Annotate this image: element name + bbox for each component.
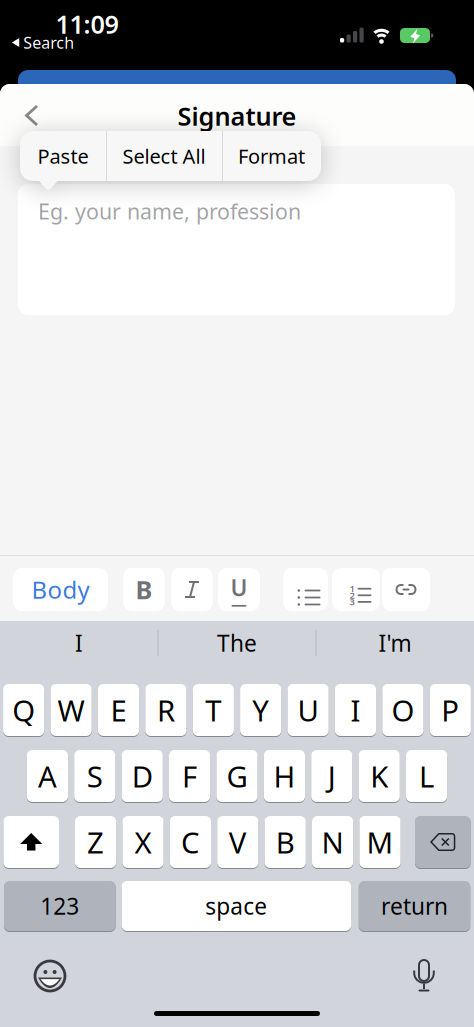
button[interactable]: Dictate <box>402 954 446 998</box>
button[interactable]: P <box>430 683 471 736</box>
button[interactable]: S <box>74 749 115 802</box>
button[interactable]: Q <box>3 683 44 736</box>
button[interactable]: Back to Search <box>12 34 74 50</box>
button[interactable]: Numbered list <box>332 568 380 611</box>
button[interactable]: F <box>169 749 210 802</box>
button[interactable]: Bold <box>123 568 165 611</box>
button[interactable]: V <box>217 815 258 868</box>
staticText: Q <box>12 690 35 729</box>
staticText: V <box>229 822 247 861</box>
button[interactable]: H <box>264 749 305 802</box>
button[interactable]: Emoji <box>28 954 72 998</box>
staticText: I <box>75 628 83 658</box>
button[interactable]: return <box>359 880 470 931</box>
staticText: B <box>135 573 152 606</box>
staticText: A <box>38 756 57 795</box>
staticText: Format <box>238 143 305 169</box>
button[interactable]: Select All <box>106 131 222 181</box>
button[interactable]: Shift <box>3 815 59 868</box>
button[interactable]: J <box>311 749 352 802</box>
button[interactable]: 123 <box>4 880 116 931</box>
staticText: C <box>181 822 200 861</box>
staticText: 123 <box>40 891 79 921</box>
staticText: E <box>110 690 126 729</box>
staticText: W <box>58 690 85 729</box>
button[interactable]: R <box>145 683 186 736</box>
staticText: Eg. your name, profession <box>38 197 301 225</box>
button[interactable]: Z <box>75 815 116 868</box>
button[interactable]: Delete <box>415 815 471 868</box>
staticText: Signature <box>177 99 296 133</box>
button[interactable]: U <box>287 683 329 736</box>
button[interactable]: The <box>159 621 315 665</box>
staticText: M <box>366 822 393 861</box>
staticText: 2 <box>349 589 354 601</box>
button[interactable]: O <box>382 683 423 736</box>
staticText: space <box>205 891 267 921</box>
staticText: U <box>230 572 247 602</box>
button[interactable]: Insert link <box>382 568 430 611</box>
staticText: Y <box>252 690 269 729</box>
button[interactable]: Text style <box>13 568 108 611</box>
button[interactable]: T <box>193 683 234 736</box>
button[interactable]: Format <box>222 131 321 181</box>
staticText: R <box>157 690 175 729</box>
button[interactable]: Y <box>240 683 281 736</box>
staticText: Search <box>23 32 74 53</box>
button[interactable]: Paste <box>20 131 106 181</box>
staticText: J <box>328 756 336 795</box>
button[interactable]: A <box>27 749 68 802</box>
staticText: H <box>273 756 295 795</box>
button[interactable]: Signature text <box>18 184 455 315</box>
button[interactable]: M <box>359 815 401 868</box>
staticText: B <box>276 822 295 861</box>
staticText: D <box>132 756 153 795</box>
staticText: Body <box>31 574 89 605</box>
staticText: S <box>87 756 103 795</box>
staticText: O <box>391 690 414 729</box>
staticText: K <box>370 756 388 795</box>
button[interactable]: L <box>406 749 447 802</box>
staticText: I'm <box>378 628 411 658</box>
staticText: T <box>205 690 221 729</box>
button[interactable]: E <box>98 683 139 736</box>
staticText: L <box>419 756 434 795</box>
button[interactable]: Back <box>23 104 47 127</box>
staticText: return <box>381 891 448 921</box>
staticText: Select All <box>122 143 205 169</box>
button[interactable]: Underline <box>218 568 260 611</box>
button[interactable]: K <box>359 749 400 802</box>
button[interactable]: Bulleted list <box>283 568 328 611</box>
staticText: 11:09 <box>55 7 118 41</box>
button[interactable]: G <box>216 749 258 802</box>
staticText: G <box>226 756 247 795</box>
staticText: P <box>441 690 459 729</box>
staticText: I <box>350 690 360 729</box>
staticText: Z <box>87 822 104 861</box>
button[interactable]: I'm <box>317 621 473 665</box>
button[interactable]: I <box>1 621 157 665</box>
button[interactable]: X <box>122 815 164 868</box>
staticText: N <box>322 822 344 861</box>
button[interactable]: W <box>50 683 92 736</box>
staticText: 3 <box>349 595 354 608</box>
staticText: 1 <box>349 582 354 595</box>
button[interactable]: space <box>122 880 351 931</box>
staticText: F <box>182 756 197 795</box>
staticText: X <box>134 822 151 861</box>
button[interactable]: C <box>170 815 211 868</box>
staticText: The <box>217 628 257 658</box>
staticText: Paste <box>37 143 88 169</box>
button[interactable]: N <box>312 815 353 868</box>
button[interactable]: Italic <box>171 568 213 611</box>
staticText: U <box>298 690 319 729</box>
button[interactable]: D <box>122 749 163 802</box>
button[interactable]: B <box>265 815 306 868</box>
button[interactable]: I <box>335 683 376 736</box>
